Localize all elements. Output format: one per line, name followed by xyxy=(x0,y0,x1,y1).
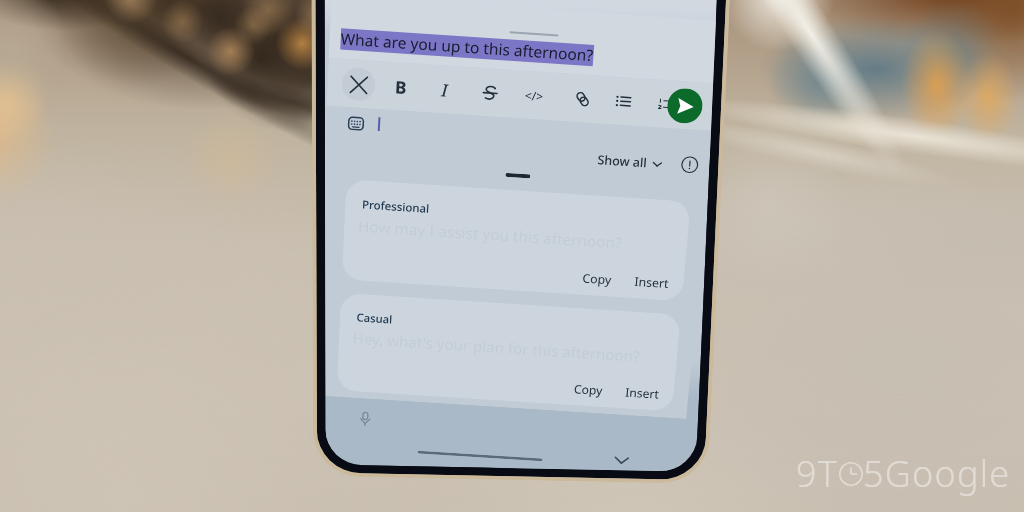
button[interactable]: Copy xyxy=(579,268,616,290)
staticText: Copy xyxy=(582,270,613,288)
button[interactable]: Insert xyxy=(631,271,673,294)
button[interactable]: Casual xyxy=(336,293,681,412)
button[interactable]: Send xyxy=(666,87,704,124)
staticText: </> xyxy=(524,87,544,104)
staticText: B xyxy=(394,75,408,99)
button[interactable]: Keyboard xyxy=(347,114,365,133)
button[interactable]: Copy xyxy=(570,379,607,401)
button[interactable]: Close formatting xyxy=(341,67,376,102)
staticText: I xyxy=(441,78,449,102)
button[interactable]: Professional xyxy=(342,179,692,301)
button[interactable]: Insert link xyxy=(564,80,601,117)
staticText: 9T xyxy=(796,449,839,498)
staticText: Copy xyxy=(573,381,604,399)
staticText: Insert xyxy=(625,384,660,402)
button[interactable]: Collapse xyxy=(608,447,635,470)
staticText: Insert xyxy=(634,273,670,292)
staticText: What are you up to this afternoon? xyxy=(340,28,595,66)
button[interactable]: Numbered list xyxy=(645,86,682,122)
button[interactable]: Code xyxy=(516,77,552,113)
button[interactable]: Voice input xyxy=(355,409,375,429)
button[interactable]: Strikethrough xyxy=(472,74,508,111)
button[interactable]: Bulleted list xyxy=(605,83,642,119)
button[interactable]: Show all xyxy=(594,148,666,175)
staticText: Show all xyxy=(597,151,648,171)
staticText: Casual xyxy=(356,310,393,327)
button[interactable]: Italic xyxy=(426,71,463,108)
button[interactable]: Insert xyxy=(621,382,663,404)
staticText: 5Google xyxy=(863,449,1011,498)
button[interactable]: Info xyxy=(678,154,700,175)
button[interactable]: Bold xyxy=(383,68,419,105)
staticText: Professional xyxy=(362,197,430,217)
